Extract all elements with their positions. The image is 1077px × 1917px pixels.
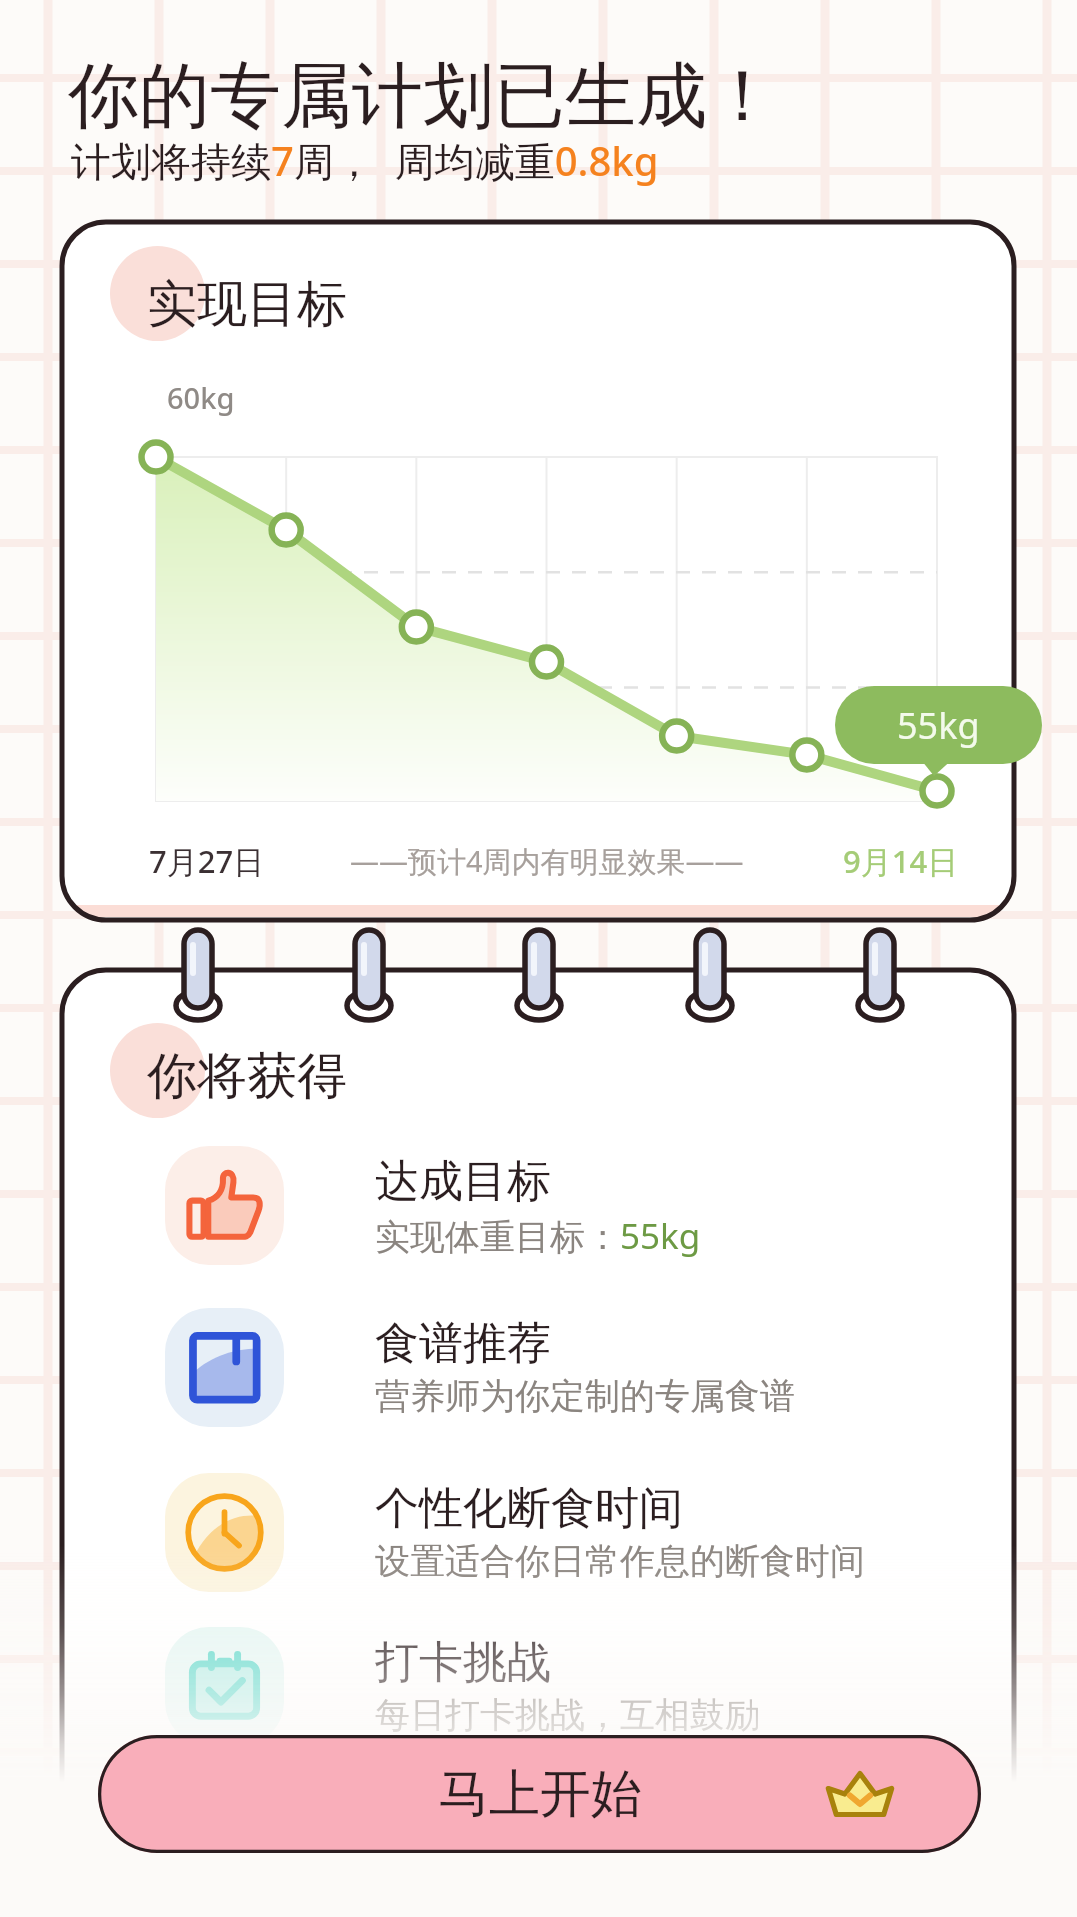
staticText: 7月27日 bbox=[149, 840, 265, 882]
staticText: ——预计4周内有明显效果—— bbox=[350, 841, 744, 881]
staticText: 你将获得 bbox=[147, 1045, 347, 1108]
staticText: 马上开始 bbox=[438, 1762, 642, 1826]
staticText: 55kg bbox=[897, 701, 980, 750]
staticText: 食谱推荐 bbox=[375, 1316, 551, 1371]
staticText: 你的专属计划已生成！ bbox=[68, 52, 778, 141]
staticText: 每日打卡挑战，互相鼓励 bbox=[375, 1693, 760, 1737]
other: VIP bbox=[824, 1769, 896, 1819]
staticText: 营养师为你定制的专属食谱 bbox=[375, 1374, 795, 1418]
staticText: 60kg bbox=[167, 378, 235, 417]
staticText: 打卡挑战 bbox=[375, 1635, 551, 1690]
staticText: 设置适合你日常作息的断食时间 bbox=[375, 1539, 865, 1583]
button[interactable]: 个性化断食时间 bbox=[165, 1473, 965, 1593]
staticText: 计划将持续7周， 周均减重0.8kg bbox=[71, 133, 659, 188]
staticText: 实现体重目标：55kg bbox=[375, 1212, 701, 1260]
staticText: 实现目标 bbox=[147, 273, 347, 336]
button[interactable]: 食谱推荐 bbox=[165, 1308, 965, 1428]
button[interactable]: 马上开始 bbox=[98, 1735, 981, 1853]
staticText: 达成目标 bbox=[375, 1154, 551, 1209]
button[interactable]: 达成目标 bbox=[165, 1146, 965, 1266]
button[interactable]: 打卡挑战 bbox=[165, 1627, 965, 1747]
staticText: 9月14日 bbox=[843, 840, 959, 882]
staticText: 个性化断食时间 bbox=[375, 1481, 683, 1536]
